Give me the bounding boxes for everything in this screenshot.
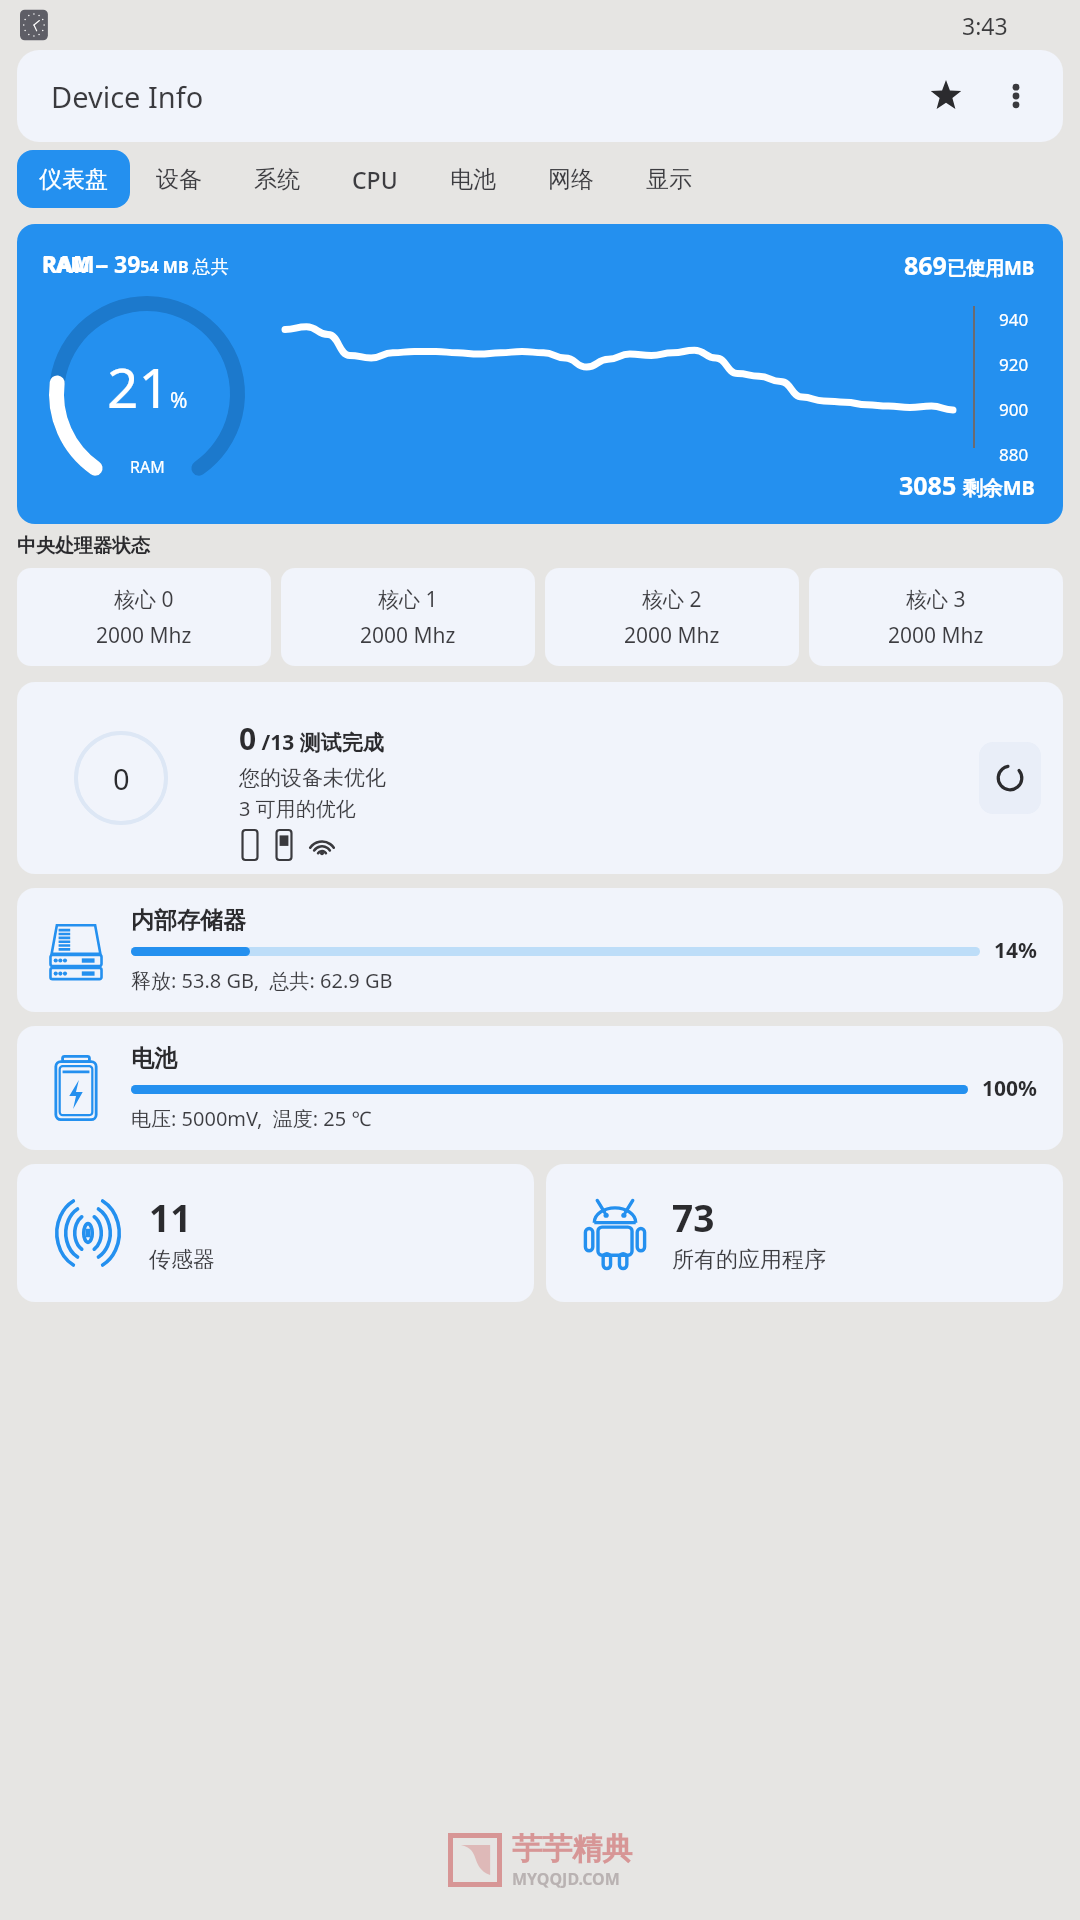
staticText: 设备 <box>156 165 202 194</box>
staticText: 0 <box>113 759 130 798</box>
staticText: 11 <box>149 1192 192 1242</box>
staticText: 21% <box>107 349 188 424</box>
staticText: 2000 Mhz <box>360 621 456 650</box>
staticText: 中央处理器状态 <box>17 534 150 558</box>
button[interactable]: CPU <box>326 150 424 208</box>
button[interactable]: RAM - <box>17 224 1063 524</box>
button[interactable]: 核心 3 <box>809 568 1063 666</box>
staticText: RAM - 3954 MB 总共 <box>42 248 229 279</box>
button[interactable]: 电池 <box>17 1026 1063 1150</box>
button[interactable]: 显示 <box>620 150 718 208</box>
staticText: 100% <box>982 1074 1037 1103</box>
staticText: 内部存储器 <box>131 906 246 935</box>
staticText: 73 <box>672 1192 715 1242</box>
staticText: RAM <box>130 456 165 478</box>
staticText: 0 /13 测试完成 <box>239 718 384 759</box>
staticText: 900 <box>999 398 1029 421</box>
staticText: 核心 3 <box>906 585 966 614</box>
button[interactable]: 设备 <box>130 150 228 208</box>
staticText: 仪表盘 <box>39 165 108 194</box>
button[interactable]: More options <box>987 67 1045 125</box>
staticText: 您的设备未优化 <box>239 765 386 791</box>
staticText: 3:43 <box>962 10 1008 41</box>
staticText: 系统 <box>254 165 300 194</box>
button[interactable]: 核心 2 <box>545 568 799 666</box>
staticText: 3085 剩余MB <box>899 468 1035 502</box>
button[interactable]: 内部存储器 <box>17 888 1063 1012</box>
button[interactable]: 网络 <box>522 150 620 208</box>
staticText: 网络 <box>548 165 594 194</box>
staticText: 芋芋精典 <box>512 1830 632 1868</box>
staticText: 核心 0 <box>114 585 174 614</box>
button[interactable]: 0 <box>17 682 1063 874</box>
staticText: 传感器 <box>149 1246 215 1274</box>
staticText: CPU <box>352 164 398 195</box>
button[interactable]: 仪表盘 <box>17 150 130 208</box>
staticText: 电压: 5000mV, 温度: 25 ℃ <box>131 1105 372 1132</box>
staticText: 3 可用的优化 <box>239 795 356 822</box>
staticText: 电池 <box>450 165 496 194</box>
button[interactable]: 系统 <box>228 150 326 208</box>
staticText: 电池 <box>131 1044 177 1073</box>
staticText: 2000 Mhz <box>624 621 720 650</box>
staticText: 所有的应用程序 <box>672 1246 826 1274</box>
staticText: RAM - <box>42 250 108 279</box>
staticText: 显示 <box>646 165 692 194</box>
staticText: 920 <box>999 353 1029 376</box>
button[interactable]: 电池 <box>424 150 522 208</box>
button[interactable]: 核心 0 <box>17 568 271 666</box>
button[interactable]: Refresh <box>979 742 1041 814</box>
staticText: 869已使用MB <box>904 248 1035 282</box>
button[interactable]: 11 <box>17 1164 534 1302</box>
staticText: 14% <box>994 936 1037 965</box>
button[interactable]: Favorite <box>917 67 975 125</box>
staticText: 940 <box>999 308 1029 331</box>
staticText: 880 <box>999 443 1029 466</box>
button[interactable]: 核心 1 <box>281 568 535 666</box>
staticText: 核心 2 <box>642 585 702 614</box>
staticText: 2000 Mhz <box>888 621 984 650</box>
button[interactable]: 73 <box>546 1164 1063 1302</box>
staticText: Device Info <box>51 77 204 116</box>
staticText: MYQQJD.COM <box>512 1868 620 1890</box>
staticText: 核心 1 <box>378 585 438 614</box>
staticText: 释放: 53.8 GB, 总共: 62.9 GB <box>131 967 393 994</box>
staticText: 2000 Mhz <box>96 621 192 650</box>
